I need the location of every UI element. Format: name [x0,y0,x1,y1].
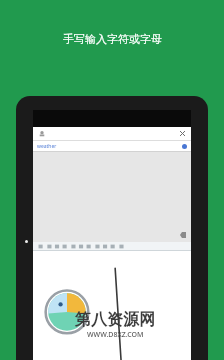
button[interactable]: weather [37,141,187,151]
button[interactable]: Close [178,129,187,138]
staticText: WWW.D8XZ.COM [87,330,144,340]
button[interactable]: Input method [37,129,46,138]
button[interactable]: Search [182,144,187,149]
button[interactable]: Backspace [179,231,186,238]
staticText: weather [37,143,57,150]
staticText: 第八资源网 [75,310,155,330]
staticText: 手写输入字符或字母 [63,32,162,46]
